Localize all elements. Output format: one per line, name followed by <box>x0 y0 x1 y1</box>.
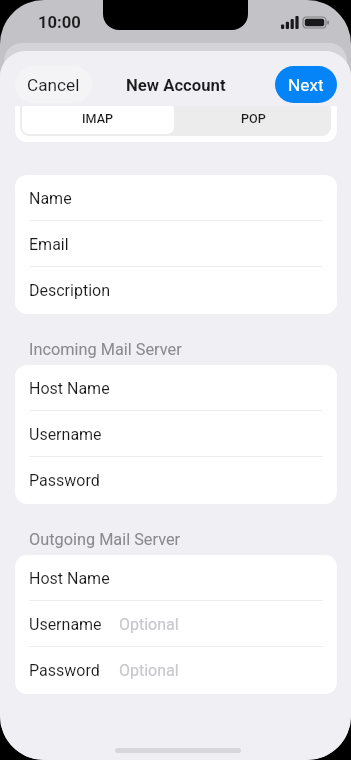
button[interactable]: Name <box>15 175 337 221</box>
button[interactable]: Description <box>15 267 337 313</box>
staticText: New Account <box>126 76 226 96</box>
button[interactable]: Email <box>15 221 337 267</box>
staticText: Username <box>29 615 102 634</box>
button[interactable]: Username <box>15 601 337 647</box>
staticText: Username <box>29 425 102 444</box>
button[interactable]: Host Name <box>15 365 337 411</box>
button[interactable]: IMAP <box>22 102 174 134</box>
staticText: 10:00 <box>38 13 81 32</box>
staticText: Password <box>29 471 100 490</box>
button[interactable]: Host Name <box>15 555 337 601</box>
staticText: POP <box>241 111 266 126</box>
staticText: Cancel <box>27 75 80 95</box>
staticText: Outgoing Mail Server <box>29 530 181 549</box>
button[interactable]: Password <box>15 647 337 693</box>
button[interactable]: POP <box>177 102 329 134</box>
staticText: Optional <box>119 661 179 680</box>
staticText: Host Name <box>29 569 110 588</box>
staticText: Email <box>29 235 69 254</box>
button[interactable]: Username <box>15 411 337 457</box>
staticText: Optional <box>119 615 179 634</box>
button[interactable]: Next <box>275 66 337 103</box>
staticText: Host Name <box>29 379 110 398</box>
staticText: IMAP <box>82 111 114 126</box>
staticText: Description <box>29 281 110 300</box>
button[interactable]: Password <box>15 457 337 503</box>
button[interactable]: Cancel <box>15 66 92 103</box>
staticText: Incoming Mail Server <box>29 340 182 359</box>
staticText: Password <box>29 661 100 680</box>
staticText: Next <box>288 75 324 95</box>
staticText: Name <box>29 189 72 208</box>
